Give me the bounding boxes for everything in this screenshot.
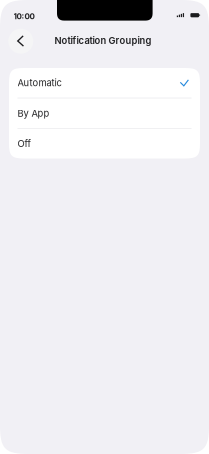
staticText: By App xyxy=(18,108,50,119)
staticText: 10:00 xyxy=(14,11,35,21)
staticText: Automatic xyxy=(18,77,62,88)
staticText: Off xyxy=(18,138,31,149)
button[interactable]: Back xyxy=(8,29,33,54)
button[interactable]: Automatic xyxy=(9,68,200,98)
button[interactable]: Off xyxy=(9,129,200,158)
button[interactable]: By App xyxy=(9,98,200,128)
staticText: Notification Grouping xyxy=(54,35,151,46)
